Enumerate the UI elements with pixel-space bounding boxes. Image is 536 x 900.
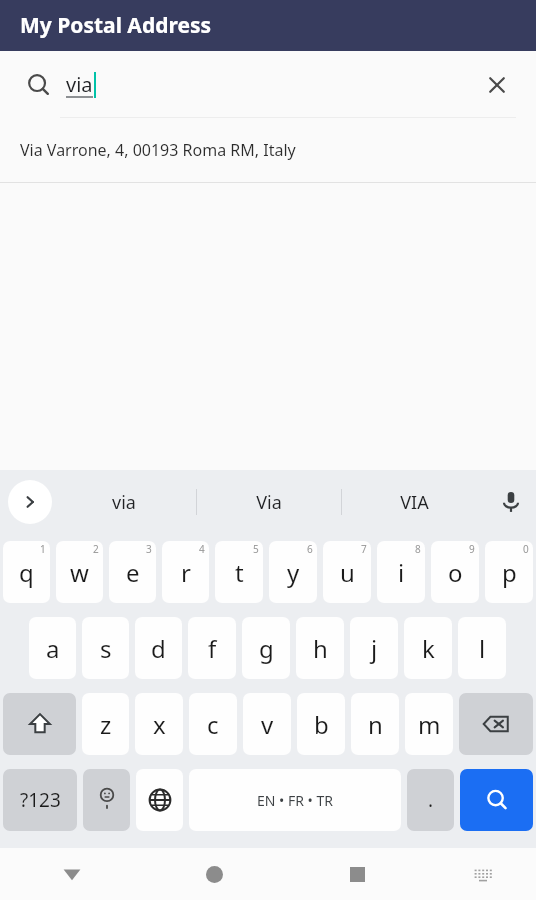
staticText: 7 [361,542,367,556]
staticText: 4 [199,542,205,556]
button[interactable]: 1 [3,541,50,603]
staticText: 0 [523,542,529,556]
staticText: d [151,632,166,665]
button[interactable]: m [405,693,453,755]
staticText: r [181,556,191,589]
staticText: w [70,556,89,589]
staticText: Via Varrone, 4, 00193 Roma RM, Italy [20,139,296,161]
staticText: 1 [40,542,46,556]
staticText: m [418,708,441,741]
staticText: 3 [146,542,152,556]
staticText: via [66,71,93,98]
staticText: x [153,708,166,741]
button[interactable]: Home [143,848,286,900]
staticText: j [371,632,378,665]
button[interactable]: Back [0,848,143,900]
staticText: VIA [400,490,429,515]
button[interactable]: h [296,617,344,679]
button[interactable]: Voice input [486,470,536,534]
button[interactable]: Shift [3,693,76,755]
staticText: 6 [307,542,313,556]
button[interactable]: 7 [323,541,371,603]
button[interactable]: Via [197,470,341,534]
staticText: z [100,708,112,741]
button[interactable]: z [82,693,129,755]
staticText: EN • FR • TR [257,791,333,810]
staticText: u [340,556,355,589]
button[interactable]: ?123 [3,769,77,831]
button[interactable]: via [52,470,196,534]
staticText: s [100,632,112,665]
staticText: h [313,632,328,665]
button[interactable]: Via Varrone, 4, 00193 Roma RM, Italy [0,118,536,182]
button[interactable]: g [242,617,290,679]
staticText: b [314,708,329,741]
staticText: 9 [469,542,475,556]
button[interactable]: Space [189,769,401,831]
button[interactable]: d [135,617,182,679]
button[interactable]: 6 [269,541,317,603]
button[interactable]: s [82,617,129,679]
button[interactable]: Search [22,68,56,102]
staticText: via [112,490,136,515]
button[interactable]: Expand toolbar [8,480,52,524]
button[interactable]: Backspace [459,693,533,755]
button[interactable]: c [189,693,237,755]
staticText: f [208,632,217,665]
staticText: 2 [93,542,99,556]
staticText: ?123 [20,787,61,813]
button[interactable]: 4 [162,541,209,603]
staticText: a [46,632,60,665]
button[interactable]: Switch keyboard [429,848,536,900]
button[interactable]: 8 [377,541,425,603]
staticText: 8 [415,542,421,556]
button[interactable]: VIA [342,470,486,534]
staticText: . [428,787,434,813]
staticText: p [502,556,517,589]
button[interactable]: v [243,693,291,755]
staticText: t [235,556,244,589]
button[interactable]: 0 [485,541,533,603]
staticText: Via [256,490,282,515]
button[interactable]: b [297,693,345,755]
staticText: c [207,708,219,741]
button[interactable]: 5 [215,541,263,603]
button[interactable]: 2 [56,541,103,603]
button[interactable]: Clear search [478,66,516,104]
staticText: 5 [253,542,259,556]
staticText: n [368,708,383,741]
button[interactable]: l [458,617,506,679]
button[interactable]: 3 [109,541,156,603]
button[interactable]: a [29,617,76,679]
button[interactable]: f [188,617,236,679]
staticText: My Postal Address [20,11,212,40]
staticText: k [422,632,435,665]
button[interactable]: n [351,693,399,755]
staticText: l [479,632,486,665]
staticText: e [126,556,140,589]
staticText: y [287,556,300,589]
staticText: v [261,708,274,741]
button[interactable]: . [407,769,454,831]
staticText: i [398,556,405,589]
button[interactable]: Search [460,769,533,831]
staticText: q [19,556,34,589]
button[interactable]: x [135,693,183,755]
staticText: g [259,632,274,665]
button[interactable]: j [350,617,398,679]
button[interactable]: Emoji [83,769,130,831]
button[interactable]: 9 [431,541,479,603]
button[interactable]: Change language [136,769,183,831]
button[interactable]: k [404,617,452,679]
staticText: o [448,556,463,589]
button[interactable]: Recent apps [286,848,429,900]
